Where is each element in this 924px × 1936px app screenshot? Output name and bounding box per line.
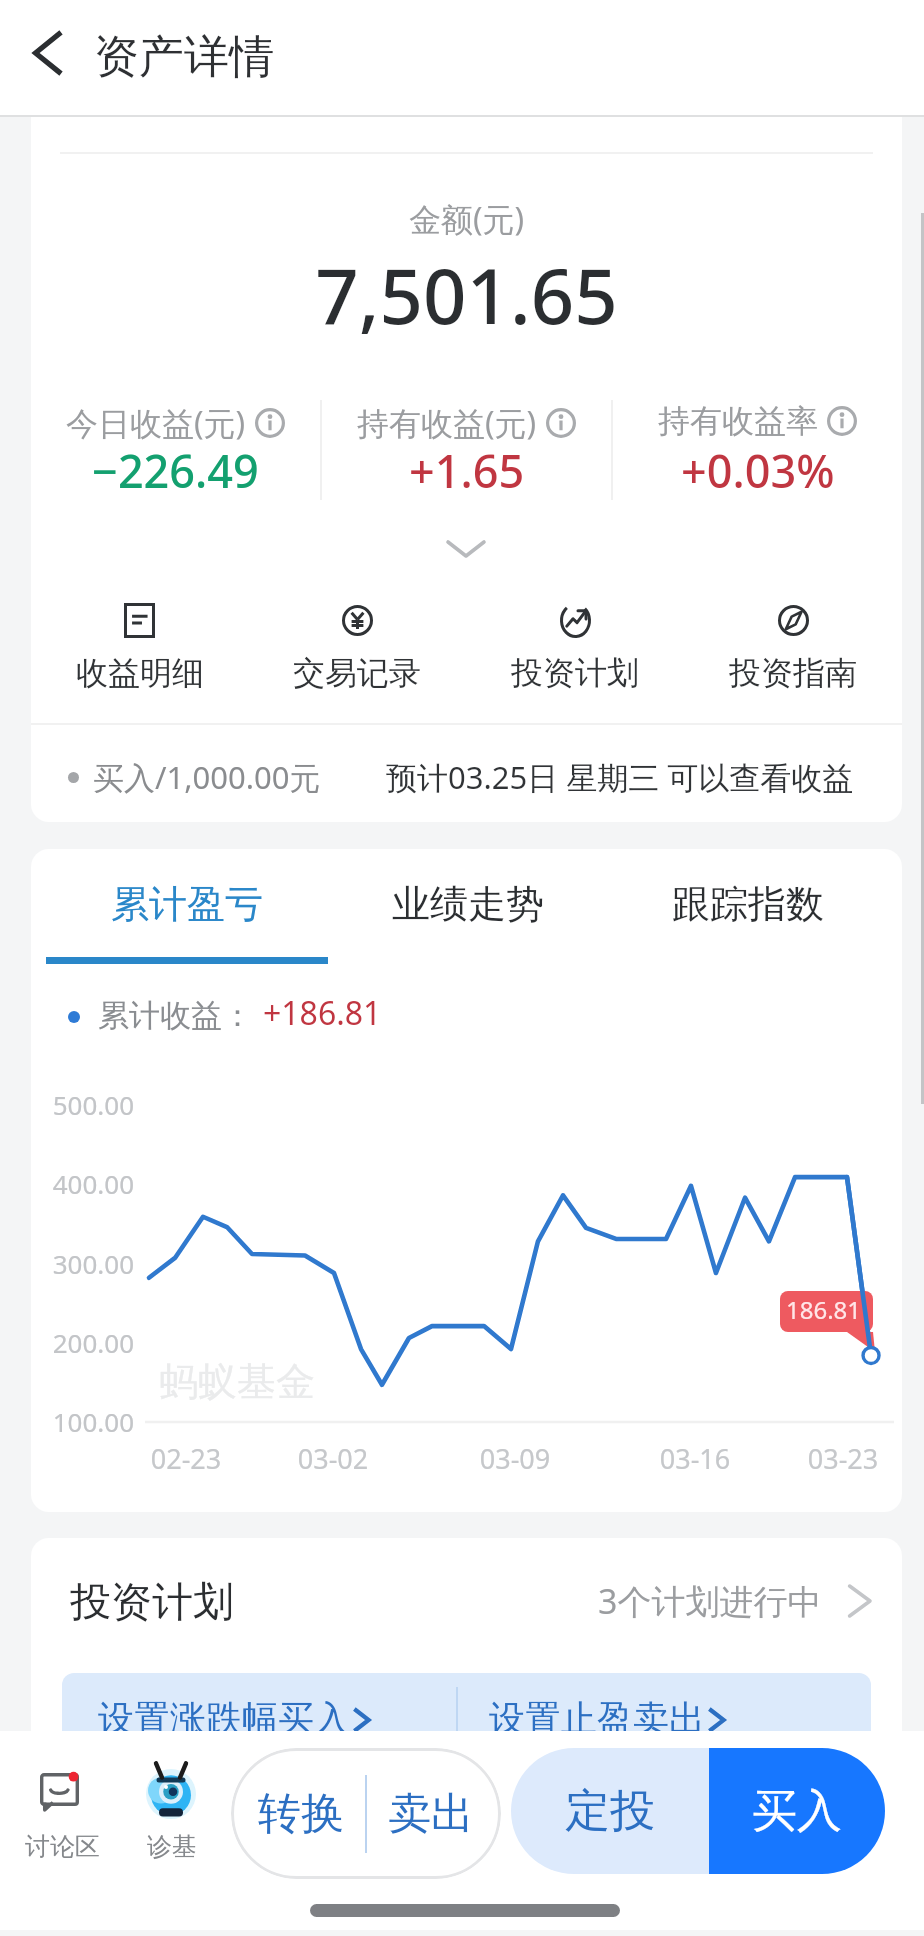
staticText: 200.00	[31, 1325, 134, 1360]
staticText: 讨论区	[25, 1831, 100, 1862]
staticText: 持有收益率	[658, 401, 818, 441]
staticText: 03-16	[635, 1440, 755, 1477]
staticText: 03-23	[783, 1440, 902, 1477]
button[interactable]: 交易记录	[248, 603, 466, 723]
button[interactable]: 转换	[231, 1748, 501, 1879]
button[interactable]: 持有收益率	[613, 400, 902, 500]
staticText: 转换	[258, 1787, 344, 1841]
staticText: 买入/1,000.00元	[93, 756, 321, 798]
staticText: 投资指南	[729, 653, 857, 693]
button[interactable]: 收益明细	[31, 603, 248, 723]
staticText: 今日收益(元)	[66, 401, 246, 445]
staticText: 资产详情	[94, 29, 274, 86]
staticText: 预计03.25日 星期三 可以查看收益	[386, 756, 854, 798]
staticText: 定投	[565, 1783, 655, 1840]
staticText: 累计盈亏	[111, 880, 263, 928]
button[interactable]: Back	[10, 12, 88, 106]
button[interactable]: 设置止盈卖出	[489, 1673, 739, 1735]
staticText: 03-02	[273, 1440, 393, 1477]
staticText: 金额(元)	[31, 197, 902, 241]
staticText: 业绩走势	[392, 880, 544, 928]
staticText: 跟踪指数	[672, 880, 824, 928]
staticText: 400.00	[31, 1166, 134, 1201]
staticText: 投资计划	[511, 653, 639, 693]
button[interactable]: 投资计划	[31, 1538, 902, 1670]
button[interactable]: Expand details	[31, 530, 902, 570]
staticText: 投资计划	[70, 1577, 234, 1629]
button[interactable]: 投资计划	[466, 603, 684, 723]
staticText: 收益明细	[76, 653, 204, 693]
button[interactable]: 定投	[511, 1748, 709, 1874]
staticText: +1.65	[409, 440, 525, 501]
button[interactable]: 持有收益(元)	[322, 400, 611, 500]
button[interactable]: 设置涨跌幅买入	[98, 1673, 378, 1735]
staticText: 设置止盈卖出	[489, 1696, 705, 1741]
button[interactable]: 买入	[709, 1748, 885, 1874]
button[interactable]: 诊基	[117, 1761, 227, 1871]
staticText: 买入	[752, 1783, 842, 1840]
staticText: 300.00	[31, 1246, 134, 1281]
staticText: 诊基	[147, 1831, 197, 1862]
staticText: 蚂蚁基金	[159, 1357, 315, 1406]
staticText: 3个计划进行中	[598, 1578, 822, 1624]
staticText: 设置涨跌幅买入	[98, 1696, 350, 1741]
staticText: 500.00	[31, 1087, 134, 1122]
staticText: 7,501.65	[31, 243, 902, 347]
staticText: +186.81	[263, 991, 382, 1035]
button[interactable]: 跟踪指数	[638, 872, 858, 968]
staticText: −226.49	[92, 440, 259, 501]
button[interactable]: 今日收益(元)	[31, 400, 320, 500]
staticText: 100.00	[31, 1404, 134, 1439]
staticText: 累计收益：	[98, 996, 253, 1035]
staticText: 03-09	[455, 1440, 575, 1477]
staticText: 卖出	[388, 1787, 474, 1841]
staticText: 交易记录	[293, 653, 421, 693]
button[interactable]: 业绩走势	[358, 872, 578, 968]
staticText: +0.03%	[681, 440, 835, 501]
button[interactable]: 投资指南	[684, 603, 902, 723]
button[interactable]: 累计盈亏	[77, 872, 297, 968]
staticText: 持有收益(元)	[357, 401, 537, 445]
button[interactable]: 讨论区	[7, 1761, 117, 1871]
staticText: 186.81	[777, 1293, 870, 1326]
staticText: 02-23	[126, 1440, 246, 1477]
